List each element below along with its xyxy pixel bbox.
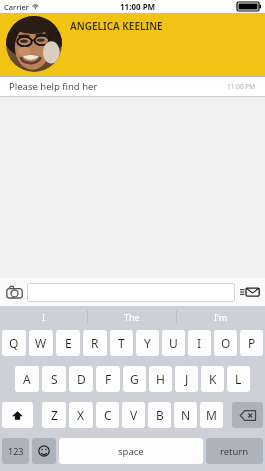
staticText: Q [9, 335, 19, 351]
button[interactable]: T [110, 330, 133, 356]
staticText: T [118, 335, 125, 351]
staticText: H [156, 371, 165, 387]
button[interactable]: 123 [2, 438, 29, 464]
button[interactable]: X [69, 402, 93, 428]
staticText: X [77, 407, 85, 423]
button[interactable]: R [83, 330, 107, 356]
button[interactable]: A [15, 366, 39, 392]
staticText: Carrier [4, 2, 29, 12]
button[interactable]: Q [2, 330, 26, 356]
button[interactable]: I [0, 306, 87, 327]
button[interactable]: P [240, 330, 263, 356]
staticText: E [65, 335, 72, 351]
button[interactable]: M [200, 402, 223, 428]
button[interactable]: W [29, 330, 53, 356]
staticText: W [35, 335, 47, 351]
button[interactable]: space [59, 438, 203, 464]
staticText: V [130, 407, 138, 423]
button[interactable]: L [227, 366, 250, 392]
staticText: return [220, 445, 249, 458]
button[interactable]: D [69, 366, 93, 392]
staticText: I [197, 335, 202, 351]
staticText: ANGELICA KEELINE [70, 19, 163, 33]
button[interactable]: Message input [27, 283, 235, 302]
button[interactable]: O [214, 330, 237, 356]
button[interactable]: G [123, 366, 146, 392]
staticText: G [130, 371, 139, 387]
button[interactable]: Shift [2, 402, 33, 428]
button[interactable]: K [201, 366, 224, 392]
button[interactable]: Z [42, 402, 66, 428]
button[interactable]: N [174, 402, 197, 428]
staticText: P [248, 335, 256, 351]
staticText: K [209, 371, 217, 387]
staticText: The [124, 311, 140, 323]
button[interactable]: J [175, 366, 198, 392]
button[interactable]: Emoji [32, 438, 56, 464]
button[interactable]: I [188, 330, 211, 356]
button[interactable]: H [149, 366, 172, 392]
button[interactable]: B [148, 402, 171, 428]
staticText: space [118, 445, 144, 458]
staticText: 123 [8, 445, 24, 457]
staticText: 11:00 PM [120, 1, 156, 12]
staticText: B [156, 407, 164, 423]
staticText: S [51, 371, 58, 387]
staticText: M [206, 407, 217, 423]
button[interactable]: Contact photo [6, 16, 62, 72]
staticText: D [77, 371, 86, 387]
staticText: L [235, 371, 242, 387]
button[interactable]: return [206, 438, 263, 464]
button[interactable]: Backspace [232, 402, 263, 428]
button[interactable]: The [88, 306, 176, 327]
button[interactable]: Y [136, 330, 159, 356]
button[interactable]: Camera [4, 282, 24, 302]
button[interactable]: F [96, 366, 120, 392]
staticText: F [105, 371, 112, 387]
button[interactable]: E [56, 330, 80, 356]
staticText: 11:00 PM [227, 82, 256, 91]
staticText: Z [51, 407, 58, 423]
staticText: J [185, 371, 189, 387]
staticText: Please help find her [9, 80, 98, 93]
staticText: R [91, 335, 99, 351]
button[interactable]: S [42, 366, 66, 392]
staticText: A [23, 371, 31, 387]
staticText: U [169, 335, 178, 351]
staticText: Y [144, 335, 151, 351]
button[interactable]: V [122, 402, 145, 428]
button[interactable]: C [96, 402, 119, 428]
button[interactable]: U [162, 330, 185, 356]
button[interactable]: I'm [177, 306, 265, 327]
staticText: C [104, 407, 112, 423]
staticText: I [42, 311, 46, 323]
staticText: I'm [214, 311, 228, 323]
staticText: O [221, 335, 231, 351]
staticText: N [181, 407, 191, 423]
button[interactable]: Send [239, 281, 261, 303]
button[interactable]: Please help find her [0, 77, 265, 96]
